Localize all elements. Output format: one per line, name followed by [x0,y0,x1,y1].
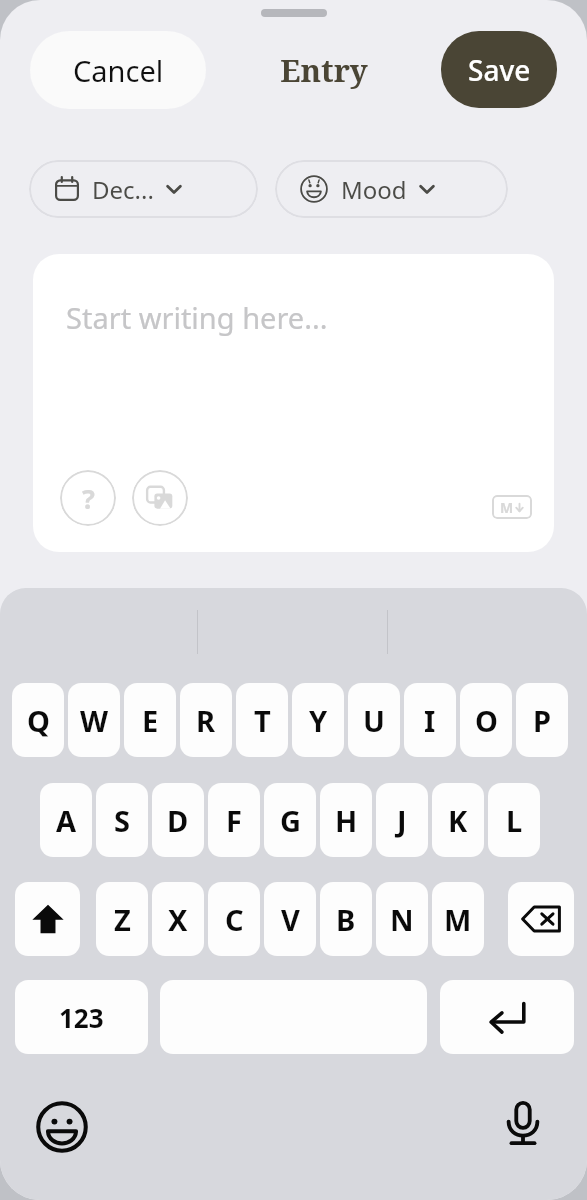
staticText: Z [114,900,131,939]
button[interactable]: Add image [132,470,188,526]
button[interactable]: P [516,683,568,757]
button[interactable]: N [376,882,428,956]
staticText: R [196,701,216,740]
button[interactable]: Cancel [30,31,206,109]
staticText: Start writing here... [66,298,328,337]
staticText: Save [468,51,531,89]
staticText: X [168,900,188,939]
button[interactable]: J [376,783,428,857]
staticText: T [254,701,271,740]
button[interactable]: I [404,683,456,757]
staticText: U [363,701,385,740]
staticText: F [226,801,242,840]
staticText: H [335,801,358,840]
staticText: M [500,498,514,517]
staticText: D [167,801,189,840]
staticText: I [424,701,436,740]
button[interactable]: E [124,683,176,757]
staticText: E [142,701,159,740]
staticText: Entry [280,49,368,91]
button[interactable]: Q [12,683,64,757]
button[interactable]: G [264,783,316,857]
button[interactable]: S [96,783,148,857]
button[interactable]: H [320,783,372,857]
button[interactable]: V [264,882,316,956]
button[interactable]: Y [292,683,344,757]
button[interactable]: Markdown [492,495,532,519]
button[interactable]: X [152,882,204,956]
button[interactable]: K [432,783,484,857]
staticText: J [397,801,407,840]
staticText: Cancel [73,51,164,90]
staticText: V [281,900,300,939]
button[interactable]: Mood [275,160,508,218]
staticText: Mood [341,173,407,206]
button[interactable]: T [236,683,288,757]
button[interactable]: Z [96,882,148,956]
button[interactable]: R [180,683,232,757]
staticText: G [280,801,301,840]
button[interactable]: Save [441,31,557,108]
button[interactable]: Shift [15,882,80,956]
button[interactable]: Start writing here... [33,254,554,552]
staticText: A [56,801,77,840]
button[interactable]: U [348,683,400,757]
staticText: M [444,900,472,939]
button[interactable]: Space [160,980,427,1054]
button[interactable]: Dec... [29,160,258,218]
button[interactable]: Voice input [495,1096,551,1152]
staticText: K [448,801,468,840]
button[interactable]: A [40,783,92,857]
staticText: 123 [59,1000,104,1035]
staticText: Y [309,701,328,740]
button[interactable]: M [432,882,484,956]
button[interactable]: Help [60,470,116,526]
staticText: Dec... [92,173,154,206]
staticText: W [80,701,109,740]
button[interactable]: Backspace [508,882,574,956]
staticText: N [390,900,414,939]
staticText: B [336,900,356,939]
button[interactable]: Enter [440,980,574,1054]
button[interactable]: W [68,683,120,757]
staticText: ? [82,480,95,517]
staticText: C [225,900,244,939]
button[interactable]: C [208,882,260,956]
button[interactable]: L [488,783,540,857]
staticText: L [506,801,523,840]
button[interactable]: 123 [15,980,148,1054]
button[interactable]: Emoji [33,1098,91,1156]
staticText: P [533,701,552,740]
button[interactable]: O [460,683,512,757]
button[interactable]: F [208,783,260,857]
button[interactable]: B [320,882,372,956]
staticText: Q [27,701,50,740]
button[interactable]: D [152,783,204,857]
staticText: S [114,801,130,840]
staticText: O [475,701,498,740]
